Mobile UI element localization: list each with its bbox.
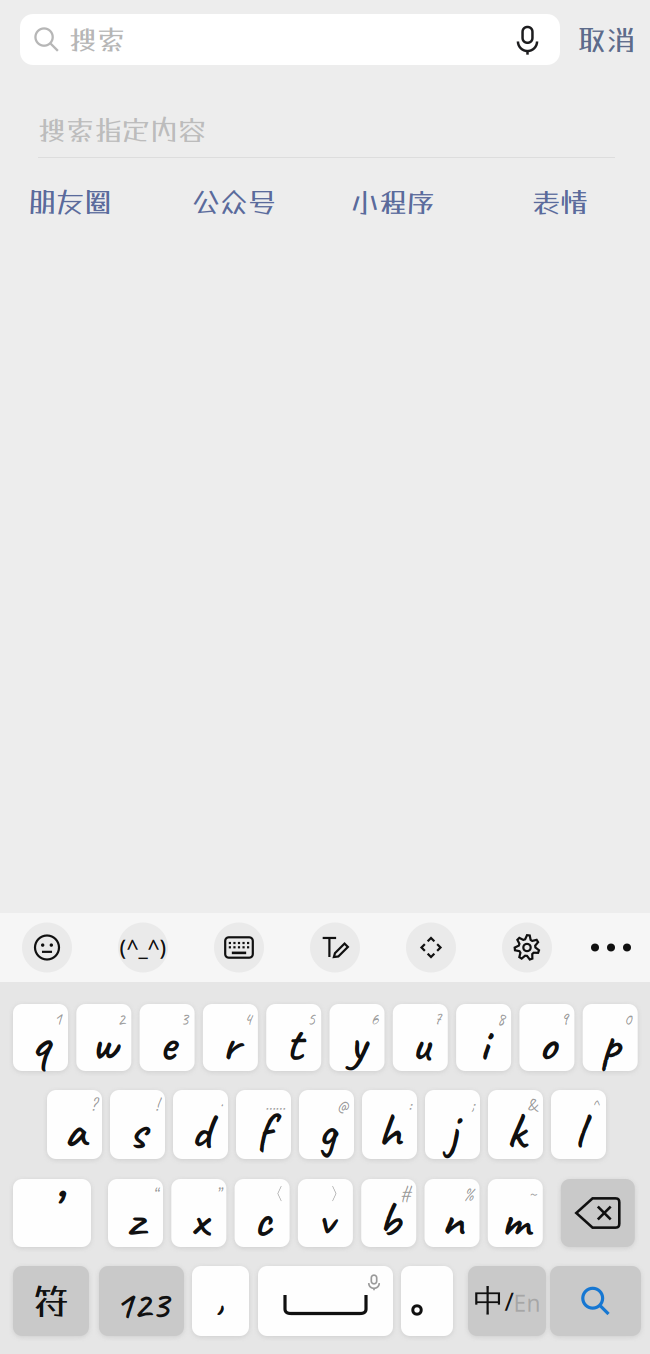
button[interactable]: x (171, 1179, 226, 1247)
staticText: g (317, 1099, 335, 1162)
button[interactable]: z (108, 1179, 163, 1247)
button[interactable]: Numbers (99, 1266, 184, 1336)
staticText: 2 (117, 1008, 125, 1030)
button[interactable]: e (140, 1004, 195, 1071)
staticText: o (538, 1012, 556, 1075)
button[interactable]: 朋友圈 (28, 186, 128, 218)
staticText: 8 (497, 1008, 505, 1030)
staticText: 4 (244, 1008, 252, 1030)
button[interactable]: m (488, 1179, 543, 1247)
staticText: 1 (54, 1008, 62, 1030)
staticText: w (91, 1012, 117, 1075)
button[interactable]: 搜索 (20, 14, 560, 65)
staticText: 取消 (577, 22, 635, 57)
staticText: % (463, 1183, 473, 1205)
staticText: h (377, 1099, 401, 1162)
button[interactable]: Delete (561, 1179, 635, 1247)
button[interactable]: Keyboard layout (205, 913, 273, 981)
staticText: a (63, 1099, 85, 1162)
staticText: …… (265, 1094, 285, 1116)
staticText: l (574, 1099, 583, 1162)
button[interactable]: 小程序 (351, 186, 451, 218)
staticText: r (221, 1012, 239, 1075)
staticText: : (408, 1094, 411, 1116)
button[interactable]: Symbols (13, 1266, 89, 1336)
staticText: , (216, 1267, 225, 1324)
button[interactable]: n (424, 1179, 479, 1247)
button[interactable]: 取消 (572, 14, 640, 65)
staticText: 〈 (267, 1183, 284, 1205)
button[interactable]: s (110, 1090, 165, 1159)
button[interactable]: l (551, 1090, 606, 1159)
button[interactable]: d (173, 1090, 228, 1159)
staticText: “ (152, 1183, 157, 1205)
staticText: 搜索 (69, 23, 125, 56)
button[interactable]: Emoji (13, 913, 81, 981)
staticText: En (513, 1288, 540, 1318)
button[interactable]: More (577, 913, 645, 981)
button[interactable]: 公众号 (192, 186, 292, 218)
button[interactable]: Switch input language (468, 1266, 546, 1336)
button[interactable]: Space (258, 1266, 393, 1336)
button[interactable]: p (583, 1004, 638, 1071)
staticText: k (506, 1099, 525, 1162)
button[interactable]: w (76, 1004, 131, 1071)
button[interactable]: j (425, 1090, 480, 1159)
staticText: (^_^) (119, 933, 166, 962)
staticText: n (440, 1187, 463, 1251)
staticText: 小程序 (351, 185, 435, 218)
button[interactable]: o (519, 1004, 574, 1071)
button[interactable]: Kaomoji (109, 913, 177, 981)
button[interactable]: t (266, 1004, 321, 1071)
button[interactable]: b (361, 1179, 416, 1247)
staticText: m (501, 1187, 530, 1251)
staticText: q (31, 1012, 50, 1075)
staticText: v (317, 1187, 334, 1251)
staticText: x (190, 1187, 207, 1251)
button[interactable]: y (329, 1004, 384, 1071)
button[interactable]: 表情 (532, 186, 602, 218)
staticText: # (400, 1183, 410, 1205)
button[interactable]: c (235, 1179, 290, 1247)
button[interactable]: Settings (493, 913, 561, 981)
staticText: ^ (592, 1094, 600, 1116)
button[interactable]: a (47, 1090, 102, 1159)
staticText: b (378, 1187, 400, 1251)
staticText: ~ (529, 1183, 537, 1205)
button[interactable]: Handwriting (301, 913, 369, 981)
staticText: 3 (181, 1008, 189, 1030)
button[interactable]: r (203, 1004, 258, 1071)
staticText: ; (471, 1094, 474, 1116)
staticText: ? (90, 1094, 96, 1116)
button[interactable]: Search (550, 1266, 641, 1336)
staticText: 9 (560, 1008, 568, 1030)
button[interactable]: Comma (192, 1266, 249, 1336)
button[interactable]: Resize keyboard (397, 913, 465, 981)
staticText: u (411, 1012, 430, 1075)
button[interactable]: Period (401, 1266, 453, 1336)
staticText: 5 (307, 1008, 315, 1030)
button[interactable]: h (362, 1090, 417, 1159)
button[interactable]: f (236, 1090, 291, 1159)
button[interactable]: i (456, 1004, 511, 1071)
staticText: / (504, 1284, 513, 1318)
staticText: e (159, 1012, 176, 1075)
staticText: ! (155, 1094, 159, 1116)
button[interactable]: k (488, 1090, 543, 1159)
staticText: 符 (33, 1280, 69, 1322)
staticText: 123 (114, 1279, 168, 1329)
staticText: & (527, 1094, 537, 1116)
button[interactable]: Apostrophe (13, 1179, 91, 1247)
staticText: c (253, 1187, 271, 1251)
staticText: 搜索指定内容 (38, 113, 206, 146)
button[interactable]: u (393, 1004, 448, 1071)
staticText: d (190, 1099, 210, 1162)
staticText: 〉 (330, 1183, 347, 1205)
button[interactable]: v (298, 1179, 353, 1247)
staticText: ’ (49, 1175, 55, 1243)
staticText: 0 (624, 1008, 632, 1030)
button[interactable]: g (299, 1090, 354, 1159)
staticText: 6 (370, 1008, 378, 1030)
button[interactable]: q (13, 1004, 68, 1071)
staticText: 7 (434, 1008, 442, 1030)
